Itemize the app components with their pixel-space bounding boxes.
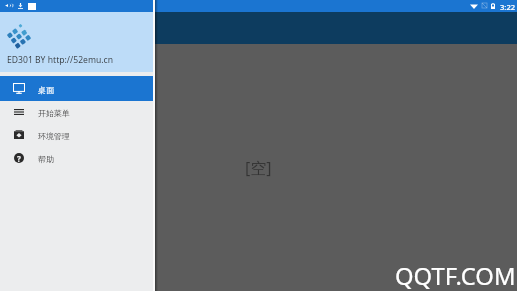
button[interactable]: 开始菜单 (0, 100, 153, 123)
button[interactable]: ? (0, 146, 153, 169)
staticText: ? (17, 153, 21, 163)
staticText: 3:22 (500, 2, 516, 12)
staticText: [空] (245, 157, 272, 179)
staticText: 开始菜单 (38, 108, 70, 118)
staticText: 桌面 (38, 85, 54, 95)
button[interactable]: 环境管理 (0, 123, 153, 146)
staticText: 帮助 (38, 154, 54, 164)
staticText: ED301 BY http://52emu.cn (7, 54, 113, 66)
button[interactable]: 桌面 (0, 77, 153, 100)
staticText: 环境管理 (38, 131, 70, 141)
staticText: QQTF.COM (395, 260, 516, 291)
